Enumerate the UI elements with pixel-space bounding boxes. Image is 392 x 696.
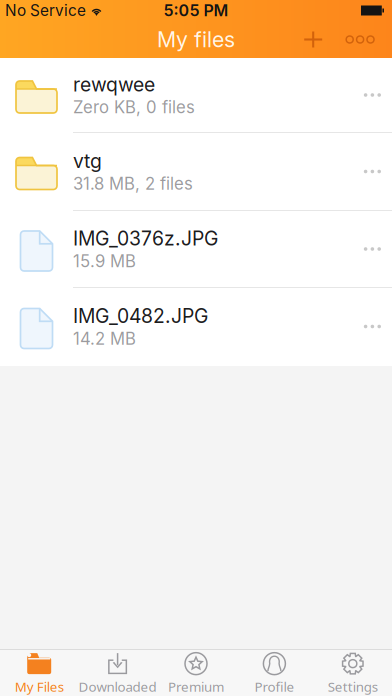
button[interactable]: rewqwee — [0, 58, 392, 133]
staticText: Settings — [328, 678, 378, 695]
button[interactable]: Settings — [314, 650, 392, 696]
button[interactable]: Downloaded — [78, 650, 157, 696]
staticText: 5:05 PM — [163, 1, 228, 20]
staticText: My Files — [15, 678, 64, 695]
button[interactable]: Profile — [235, 650, 314, 696]
button[interactable]: Add — [290, 21, 336, 58]
button[interactable]: My Files — [0, 650, 78, 696]
staticText: Zero KB, 0 files — [73, 97, 195, 117]
staticText: 14.2 MB — [73, 329, 136, 349]
button[interactable]: Premium — [157, 650, 235, 696]
button[interactable]: More options — [336, 21, 384, 58]
staticText: Downloaded — [79, 678, 157, 695]
staticText: IMG_0376z.JPG — [73, 227, 218, 250]
staticText: Premium — [168, 678, 224, 695]
staticText: No Service — [5, 1, 86, 20]
staticText: IMG_0482.JPG — [73, 304, 208, 328]
staticText: 31.8 MB, 2 files — [73, 174, 193, 194]
button[interactable]: vtg — [0, 133, 392, 211]
staticText: My files — [157, 27, 235, 52]
staticText: vtg — [73, 149, 102, 173]
button[interactable]: IMG_0482.JPG — [0, 288, 392, 366]
staticText: rewqwee — [73, 73, 155, 96]
staticText: 15.9 MB — [73, 251, 136, 271]
button[interactable]: IMG_0376z.JPG — [0, 211, 392, 288]
staticText: Profile — [254, 678, 294, 695]
